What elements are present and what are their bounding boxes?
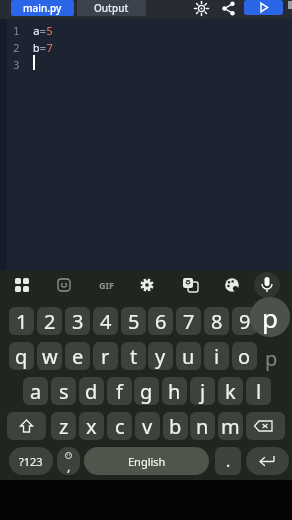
- button[interactable]: [254, 272, 280, 298]
- staticText: 2: [44, 308, 56, 335]
- staticText: d: [85, 378, 98, 405]
- button[interactable]: English: [84, 447, 209, 475]
- staticText: p: [262, 300, 278, 335]
- button[interactable]: m: [218, 412, 243, 440]
- staticText: x: [86, 413, 97, 440]
- staticText: y: [155, 343, 166, 370]
- staticText: e: [72, 343, 84, 370]
- staticText: u: [182, 343, 195, 370]
- button[interactable]: e: [65, 342, 90, 370]
- button[interactable]: l: [246, 377, 271, 405]
- button[interactable]: 7: [176, 307, 201, 335]
- button[interactable]: y: [148, 342, 173, 370]
- staticText: s: [59, 378, 69, 405]
- staticText: q: [15, 343, 28, 370]
- staticText: b=7: [33, 40, 53, 55]
- button[interactable]: GIF: [95, 279, 117, 291]
- staticText: v: [142, 413, 153, 440]
- staticText: j: [200, 378, 206, 405]
- staticText: 1: [13, 23, 20, 38]
- button[interactable]: [139, 277, 155, 293]
- staticText: i: [214, 343, 220, 370]
- button[interactable]: z: [51, 412, 76, 440]
- button[interactable]: n: [190, 412, 215, 440]
- button[interactable]: 4: [93, 307, 118, 335]
- button[interactable]: h: [162, 377, 187, 405]
- button[interactable]: a: [23, 377, 48, 405]
- staticText: a: [30, 378, 42, 405]
- button[interactable]: ,: [57, 447, 80, 475]
- staticText: main.py: [23, 1, 62, 15]
- button[interactable]: b: [163, 412, 188, 440]
- staticText: g: [140, 378, 153, 405]
- button[interactable]: u: [176, 342, 201, 370]
- staticText: 9: [239, 308, 251, 335]
- staticText: n: [196, 413, 209, 440]
- button[interactable]: [182, 277, 199, 293]
- button[interactable]: g: [134, 377, 159, 405]
- staticText: English: [128, 454, 166, 469]
- button[interactable]: o: [232, 342, 257, 370]
- staticText: m: [221, 413, 240, 440]
- button[interactable]: 1: [9, 307, 34, 335]
- button[interactable]: 3: [65, 307, 90, 335]
- button[interactable]: .: [215, 447, 241, 475]
- staticText: 6: [155, 308, 167, 335]
- staticText: 1: [16, 308, 28, 335]
- staticText: c: [115, 413, 125, 440]
- button[interactable]: 9: [232, 307, 257, 335]
- staticText: 8: [211, 308, 223, 335]
- staticText: 5: [128, 308, 140, 335]
- button[interactable]: [57, 278, 71, 292]
- staticText: p: [265, 345, 278, 372]
- button[interactable]: 5: [121, 307, 146, 335]
- button[interactable]: 6: [148, 307, 173, 335]
- button[interactable]: Output: [77, 0, 146, 16]
- staticText: 4: [100, 308, 112, 335]
- button[interactable]: [193, 0, 210, 17]
- button[interactable]: main.py: [11, 0, 74, 16]
- button[interactable]: t: [121, 342, 146, 370]
- staticText: Output: [94, 1, 129, 15]
- button[interactable]: [224, 277, 240, 293]
- button[interactable]: d: [79, 377, 104, 405]
- button[interactable]: x: [79, 412, 104, 440]
- button[interactable]: f: [107, 377, 132, 405]
- button[interactable]: r: [93, 342, 118, 370]
- button[interactable]: q: [9, 342, 34, 370]
- staticText: 7: [183, 308, 195, 335]
- button[interactable]: i: [204, 342, 229, 370]
- staticText: 3: [13, 57, 20, 72]
- staticText: l: [256, 378, 262, 405]
- staticText: 3: [72, 308, 84, 335]
- staticText: z: [59, 413, 69, 440]
- staticText: 2: [13, 40, 20, 55]
- staticText: .: [226, 450, 231, 472]
- button[interactable]: [220, 0, 237, 17]
- staticText: GIF: [99, 279, 114, 291]
- button[interactable]: v: [135, 412, 160, 440]
- button[interactable]: 8: [204, 307, 229, 335]
- button[interactable]: [7, 412, 46, 440]
- button[interactable]: s: [51, 377, 76, 405]
- button[interactable]: [246, 412, 285, 440]
- button[interactable]: [246, 447, 289, 475]
- staticText: ?123: [19, 454, 43, 469]
- staticText: t: [130, 343, 138, 370]
- staticText: r: [101, 343, 110, 370]
- button[interactable]: [14, 277, 30, 293]
- staticText: a=5: [33, 23, 53, 38]
- staticText: w: [42, 343, 58, 370]
- button[interactable]: ?123: [9, 447, 53, 475]
- staticText: k: [225, 378, 236, 405]
- button[interactable]: k: [218, 377, 243, 405]
- staticText: b: [169, 413, 182, 440]
- button[interactable]: j: [190, 377, 215, 405]
- button[interactable]: 2: [37, 307, 62, 335]
- staticText: ,: [67, 457, 71, 475]
- button[interactable]: w: [37, 342, 62, 370]
- staticText: f: [116, 378, 123, 405]
- button[interactable]: [244, 0, 283, 15]
- staticText: o: [238, 343, 251, 370]
- button[interactable]: c: [107, 412, 132, 440]
